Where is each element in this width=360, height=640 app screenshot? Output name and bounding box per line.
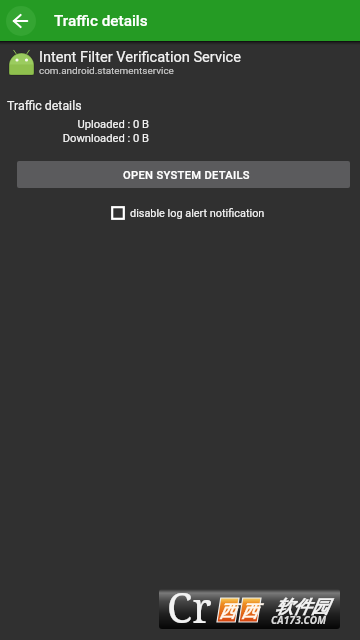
- staticText: Uploaded : 0 B: [77, 118, 149, 131]
- staticText: CA173.COM: [271, 613, 341, 627]
- staticText: 西: [219, 601, 241, 622]
- staticText: Traffic details: [54, 12, 148, 30]
- staticText: Intent Filter Verification Service: [39, 48, 241, 65]
- staticText: Cr: [167, 579, 227, 639]
- button[interactable]: Back: [6, 6, 36, 36]
- staticText: Downloaded : 0 B: [62, 132, 149, 145]
- button[interactable]: disable log alert notification: [111, 201, 265, 225]
- button[interactable]: OPEN SYSTEM DETAILS: [17, 161, 350, 188]
- staticText: 西: [241, 601, 263, 622]
- staticText: disable log alert notification: [130, 207, 265, 220]
- staticText: 软件园: [275, 596, 339, 619]
- staticText: com.android.statementservice: [39, 65, 174, 77]
- staticText: Traffic details: [7, 98, 82, 113]
- staticText: OPEN SYSTEM DETAILS: [123, 169, 250, 182]
